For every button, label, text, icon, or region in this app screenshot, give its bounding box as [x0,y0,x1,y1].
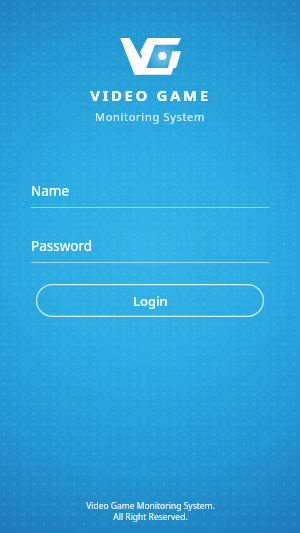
staticText: Video Game Monitoring System. All Right … [86,500,215,522]
staticText: Monitoring System [95,109,205,124]
staticText: Name [31,182,70,200]
staticText: Login [133,292,168,310]
button[interactable]: Login [36,284,264,317]
staticText: Password [31,237,93,255]
button[interactable]: Password [31,237,269,263]
staticText: VIDEO GAME [90,85,211,105]
button[interactable]: Name [31,182,269,208]
